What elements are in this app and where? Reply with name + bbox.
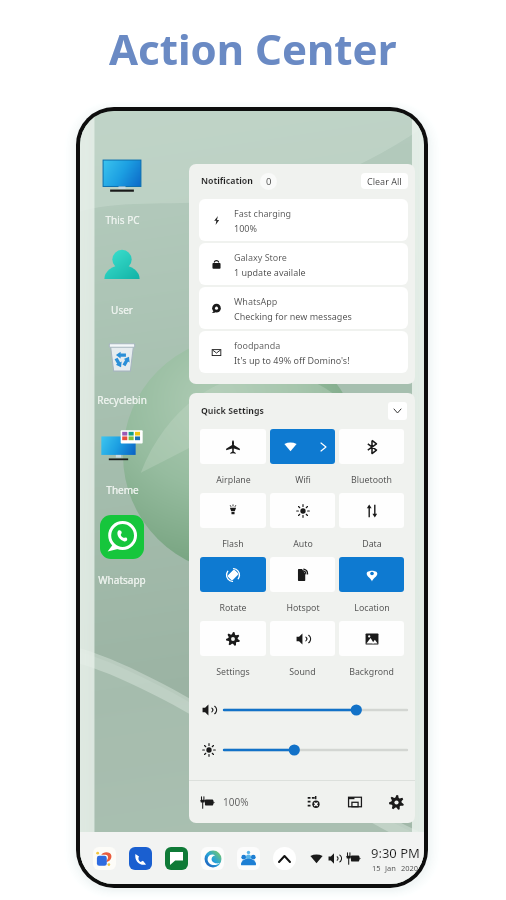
button[interactable]: Edit xyxy=(307,795,321,809)
button[interactable]: Fast charging xyxy=(199,199,408,241)
staticText: Hotspot xyxy=(286,602,320,614)
button[interactable]: WhatsApp xyxy=(199,287,408,329)
button[interactable]: Screen capture xyxy=(348,795,362,809)
staticText: User xyxy=(111,303,133,317)
button[interactable]: Airplane xyxy=(200,429,266,464)
button[interactable]: Rotate xyxy=(200,557,266,592)
button[interactable]: Wifi xyxy=(310,852,323,865)
staticText: Theme xyxy=(106,483,139,497)
staticText: foodpanda xyxy=(234,339,281,351)
button[interactable]: Wifi xyxy=(270,429,335,464)
button[interactable]: Settings xyxy=(200,621,266,656)
button[interactable]: Sound xyxy=(270,621,335,656)
button[interactable]: Flash xyxy=(200,493,266,528)
staticText: Wifi xyxy=(295,474,311,486)
staticText: Galaxy Store xyxy=(234,251,287,263)
staticText: Recyclebin xyxy=(97,393,147,407)
staticText: 15 xyxy=(372,863,381,873)
staticText: Auto xyxy=(293,538,313,550)
staticText: Airplane xyxy=(216,474,251,486)
staticText: Location xyxy=(354,602,390,614)
staticText: This PC xyxy=(105,213,140,227)
staticText: 9:30 PM xyxy=(371,844,420,862)
button[interactable]: Volume xyxy=(328,852,341,865)
staticText: Quick Settings xyxy=(201,405,264,417)
button[interactable]: Clear All xyxy=(361,173,408,189)
button[interactable]: Auto xyxy=(270,493,335,528)
staticText: 100% xyxy=(223,795,249,809)
button[interactable]: Show hidden icons xyxy=(273,847,296,870)
button[interactable]: Galaxy Store xyxy=(199,243,408,285)
staticText: Backgrond xyxy=(349,666,394,678)
staticText: Clear All xyxy=(367,175,402,187)
staticText: Data xyxy=(362,538,382,550)
staticText: Bluetooth xyxy=(351,474,392,486)
button[interactable]: foodpanda xyxy=(199,331,408,373)
button[interactable]: Settings xyxy=(389,795,404,810)
staticText: Flash xyxy=(222,538,244,550)
button[interactable]: Collapse xyxy=(388,402,407,420)
staticText: Whatsapp xyxy=(98,573,146,587)
staticText: Settings xyxy=(216,666,250,678)
button[interactable]: Battery xyxy=(346,851,361,866)
staticText: 0 xyxy=(266,175,272,188)
button[interactable]: Hotspot xyxy=(270,557,335,592)
button[interactable]: Recyclebin xyxy=(84,335,160,425)
button[interactable]: Messages xyxy=(165,847,188,870)
staticText: Action Center xyxy=(109,20,397,77)
button[interactable]: Location xyxy=(339,557,404,592)
staticText: Rotate xyxy=(219,602,247,614)
staticText: 100% xyxy=(234,222,257,234)
staticText: Notification xyxy=(201,175,253,187)
button[interactable]: Edge xyxy=(201,847,224,870)
staticText: Checking for new messages xyxy=(234,310,352,322)
button[interactable]: User xyxy=(84,245,160,335)
button[interactable]: Teams xyxy=(237,847,260,870)
button[interactable]: Theme xyxy=(84,425,160,515)
button[interactable]: Gallery xyxy=(93,847,116,870)
button[interactable]: Phone xyxy=(129,847,152,870)
button[interactable]: Bluetooth xyxy=(339,429,404,464)
button[interactable]: Data xyxy=(339,493,404,528)
button[interactable]: This PC xyxy=(84,155,160,245)
staticText: WhatsApp xyxy=(234,295,278,307)
button[interactable]: Whatsapp xyxy=(84,515,160,605)
staticText: Jan xyxy=(385,863,396,873)
button[interactable]: Backgrond xyxy=(339,621,404,656)
staticText: Sound xyxy=(289,666,316,678)
staticText: 2020 xyxy=(401,863,419,873)
staticText: 1 update availale xyxy=(234,266,306,278)
staticText: It's up to 49% off Domino's! xyxy=(234,354,350,366)
staticText: Fast charging xyxy=(234,207,292,219)
